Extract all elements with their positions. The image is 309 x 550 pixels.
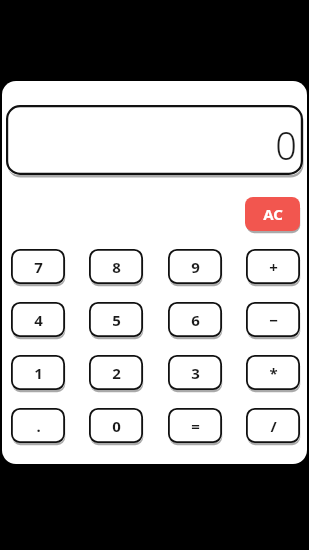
staticText: 5 — [112, 310, 121, 330]
staticText: 1 — [34, 363, 43, 383]
button[interactable]: 1 — [11, 355, 65, 390]
button[interactable]: 6 — [168, 302, 222, 337]
staticText: 0 — [112, 416, 121, 436]
staticText: 8 — [112, 257, 121, 277]
button[interactable]: 2 — [89, 355, 143, 390]
button[interactable]: 9 — [168, 249, 222, 284]
button[interactable]: 0 — [89, 408, 143, 443]
staticText: * — [269, 363, 278, 383]
button[interactable]: 0 — [6, 105, 303, 175]
button[interactable]: 7 — [11, 249, 65, 284]
staticText: = — [191, 416, 200, 436]
staticText: AC — [263, 204, 283, 224]
button[interactable]: 8 — [89, 249, 143, 284]
button[interactable]: . — [11, 408, 65, 443]
button[interactable]: 3 — [168, 355, 222, 390]
staticText: + — [269, 257, 278, 277]
button[interactable]: 5 — [89, 302, 143, 337]
staticText: 7 — [34, 257, 43, 277]
button[interactable]: = — [168, 408, 222, 443]
staticText: / — [270, 416, 277, 436]
staticText: 9 — [191, 257, 200, 277]
staticText: 0 — [275, 119, 297, 171]
button[interactable]: / — [246, 408, 300, 443]
button[interactable]: * — [246, 355, 300, 390]
button[interactable]: 4 — [11, 302, 65, 337]
button[interactable]: + — [246, 249, 300, 284]
staticText: − — [269, 310, 278, 330]
staticText: 3 — [191, 363, 200, 383]
staticText: 4 — [34, 310, 43, 330]
staticText: 2 — [112, 363, 121, 383]
staticText: 6 — [191, 310, 200, 330]
button[interactable]: All clear — [245, 197, 300, 231]
button[interactable]: − — [246, 302, 300, 337]
staticText: . — [36, 416, 41, 436]
